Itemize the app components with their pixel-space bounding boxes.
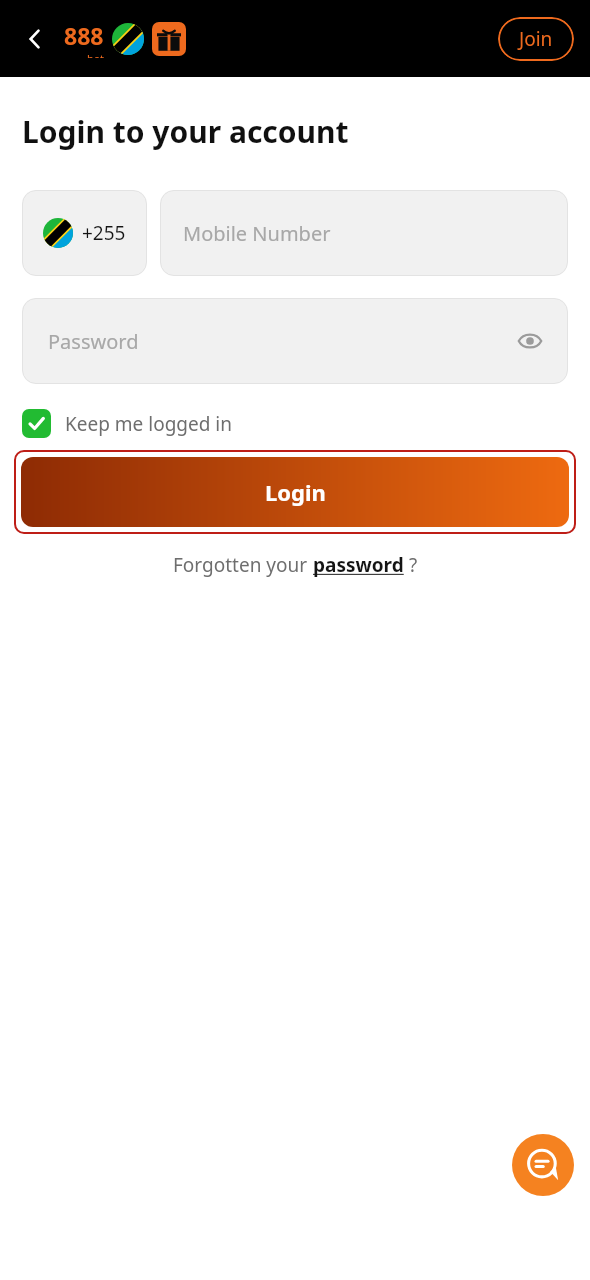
button[interactable]: Mobile Number bbox=[160, 190, 568, 276]
button[interactable]: Login bbox=[21, 457, 569, 527]
staticText: Keep me logged in bbox=[65, 411, 232, 437]
button[interactable]: Password bbox=[22, 298, 568, 384]
button[interactable]: Open chat support bbox=[512, 1134, 574, 1196]
staticText: bet bbox=[87, 51, 104, 58]
staticText: Login to your account bbox=[22, 111, 349, 152]
staticText: Password bbox=[48, 328, 139, 355]
staticText: 888 bbox=[64, 20, 104, 51]
button[interactable]: Back bbox=[14, 18, 56, 60]
button[interactable]: Keep me logged in bbox=[22, 409, 232, 438]
button[interactable]: Promotions bbox=[152, 22, 186, 56]
button[interactable]: +255 bbox=[22, 190, 147, 276]
button[interactable]: password bbox=[313, 552, 404, 578]
staticText: Mobile Number bbox=[183, 220, 331, 247]
staticText: Join bbox=[519, 26, 553, 52]
staticText: Forgotten your bbox=[173, 552, 313, 578]
staticText: +255 bbox=[82, 220, 126, 246]
button[interactable]: Join bbox=[498, 17, 574, 61]
staticText: Login bbox=[265, 477, 326, 507]
staticText: ? bbox=[404, 552, 418, 578]
button[interactable]: Show password bbox=[514, 325, 546, 357]
